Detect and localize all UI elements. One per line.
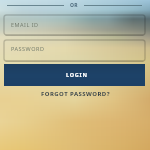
staticText: FORGOT PASSWORD? (41, 90, 110, 98)
button[interactable]: LOGIN (4, 64, 145, 86)
staticText: EMAIL ID (11, 21, 39, 28)
button[interactable]: PASSWORD (4, 40, 145, 61)
button[interactable]: FORGOT PASSWORD? (0, 88, 150, 100)
button[interactable]: EMAIL ID (4, 15, 145, 35)
staticText: OR (70, 2, 78, 9)
staticText: PASSWORD (11, 45, 45, 52)
staticText: LOGIN (66, 71, 88, 78)
